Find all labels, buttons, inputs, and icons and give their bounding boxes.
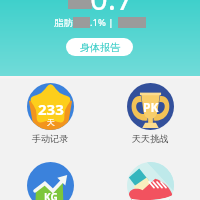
- staticText: 手动记录: [15, 133, 85, 145]
- button[interactable]: 体重记录: [15, 162, 85, 200]
- staticText: 身体报告: [80, 41, 120, 54]
- staticText: 0.7: [90, 0, 134, 19]
- staticText: 233: [38, 99, 64, 119]
- staticText: 天天挑战: [115, 133, 185, 145]
- button[interactable]: 运动记录: [115, 162, 185, 200]
- staticText: .1% |: [90, 16, 114, 29]
- staticText: 脂肪: [54, 17, 73, 29]
- staticText: PK: [143, 99, 159, 115]
- button[interactable]: 天天挑战: [115, 83, 185, 153]
- button[interactable]: 身体报告: [66, 38, 133, 56]
- staticText: KG: [44, 190, 58, 200]
- button[interactable]: 手动记录: [15, 83, 85, 153]
- staticText: 天: [47, 117, 55, 127]
